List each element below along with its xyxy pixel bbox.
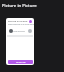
staticText: Now playing (13, 30, 25, 33)
button[interactable]: Enter picture in picture (29, 20, 32, 23)
staticText: Enter PiP (16, 61, 26, 64)
button[interactable]: Enter PiP (8, 60, 33, 64)
staticText: Picture in Picture (8, 19, 28, 22)
button[interactable]: More options (28, 29, 32, 33)
staticText: Picture in Picture (2, 2, 37, 8)
staticText: Keep playing in a small window (8, 23, 34, 26)
